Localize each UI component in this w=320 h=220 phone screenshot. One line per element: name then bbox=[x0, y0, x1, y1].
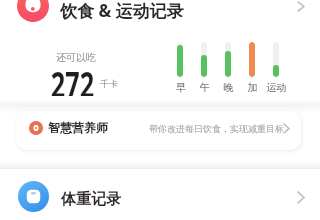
staticText: 272 bbox=[51, 60, 94, 96]
staticText: 晚 bbox=[223, 81, 234, 94]
staticText: 运动 bbox=[266, 81, 287, 94]
staticText: 智慧营养师 bbox=[48, 120, 108, 135]
staticText: 还可以吃 bbox=[56, 51, 96, 64]
staticText: 千卡 bbox=[100, 78, 118, 89]
staticText: 饮食 & 运动记录 bbox=[60, 0, 184, 22]
staticText: 帮你改进每日饮食，实现减重目标 bbox=[149, 123, 284, 134]
staticText: 午 bbox=[199, 81, 210, 94]
staticText: 早 bbox=[175, 81, 186, 94]
button[interactable] bbox=[0, 0, 320, 100]
button[interactable] bbox=[0, 169, 320, 220]
button[interactable]: 智慧营养师 bbox=[16, 111, 301, 150]
staticText: 加 bbox=[247, 81, 258, 94]
staticText: 体重记录 bbox=[61, 190, 121, 209]
